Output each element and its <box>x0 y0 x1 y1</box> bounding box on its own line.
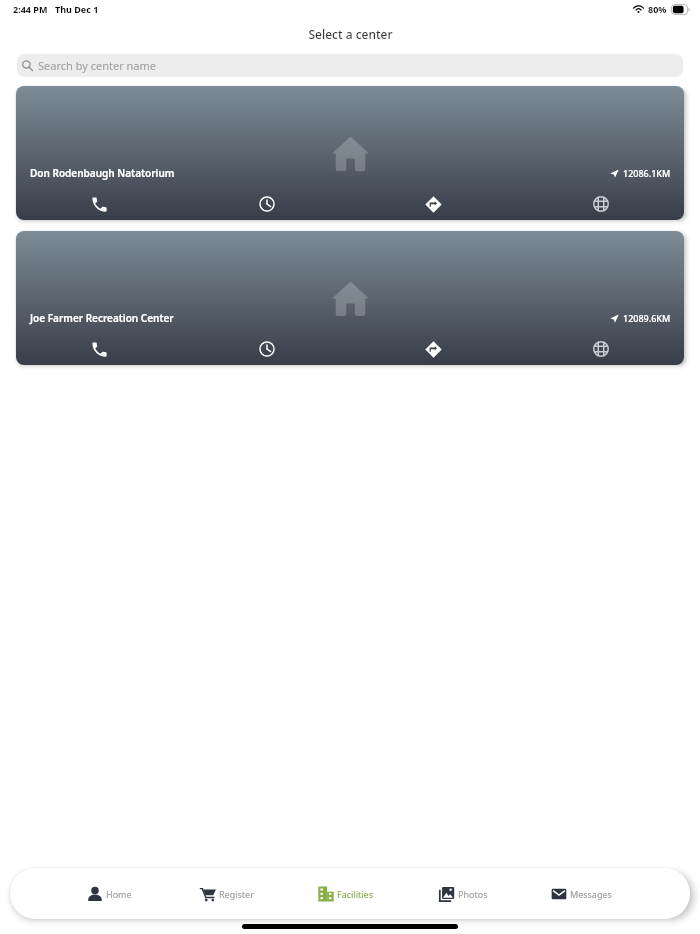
staticText: Photos <box>458 888 488 900</box>
staticText: Search by center name <box>38 58 157 73</box>
staticText: Register <box>219 888 254 900</box>
button[interactable]: Directions <box>350 333 517 365</box>
button[interactable]: Website <box>517 188 684 220</box>
staticText: Facilities <box>337 888 373 900</box>
button[interactable]: Call <box>16 188 183 220</box>
button[interactable]: Hours <box>183 188 350 220</box>
button[interactable]: Photos <box>404 868 522 919</box>
button[interactable]: Home <box>50 868 168 919</box>
staticText: Don Rodenbaugh Natatorium <box>30 166 175 180</box>
button[interactable]: Joe Farmer Recreation Center <box>16 231 684 365</box>
button[interactable]: Website <box>517 333 684 365</box>
button[interactable]: Register <box>168 868 286 919</box>
button[interactable]: Hours <box>183 333 350 365</box>
staticText: 80% <box>648 3 667 15</box>
staticText: Home <box>106 888 132 900</box>
button[interactable]: Directions <box>350 188 517 220</box>
button[interactable]: Call <box>16 333 183 365</box>
staticText: 12086.1KM <box>623 167 671 179</box>
staticText: 12089.6KM <box>623 312 671 324</box>
staticText: 2:44 PM <box>13 3 48 15</box>
staticText: Joe Farmer Recreation Center <box>30 311 174 325</box>
button[interactable]: Search by center name <box>17 54 683 77</box>
button[interactable]: Facilities <box>286 868 404 919</box>
staticText: Thu Dec 1 <box>55 3 99 15</box>
button[interactable]: Messages <box>522 868 640 919</box>
button[interactable]: Don Rodenbaugh Natatorium <box>16 86 684 220</box>
staticText: Select a center <box>308 26 393 42</box>
staticText: Messages <box>570 888 612 900</box>
